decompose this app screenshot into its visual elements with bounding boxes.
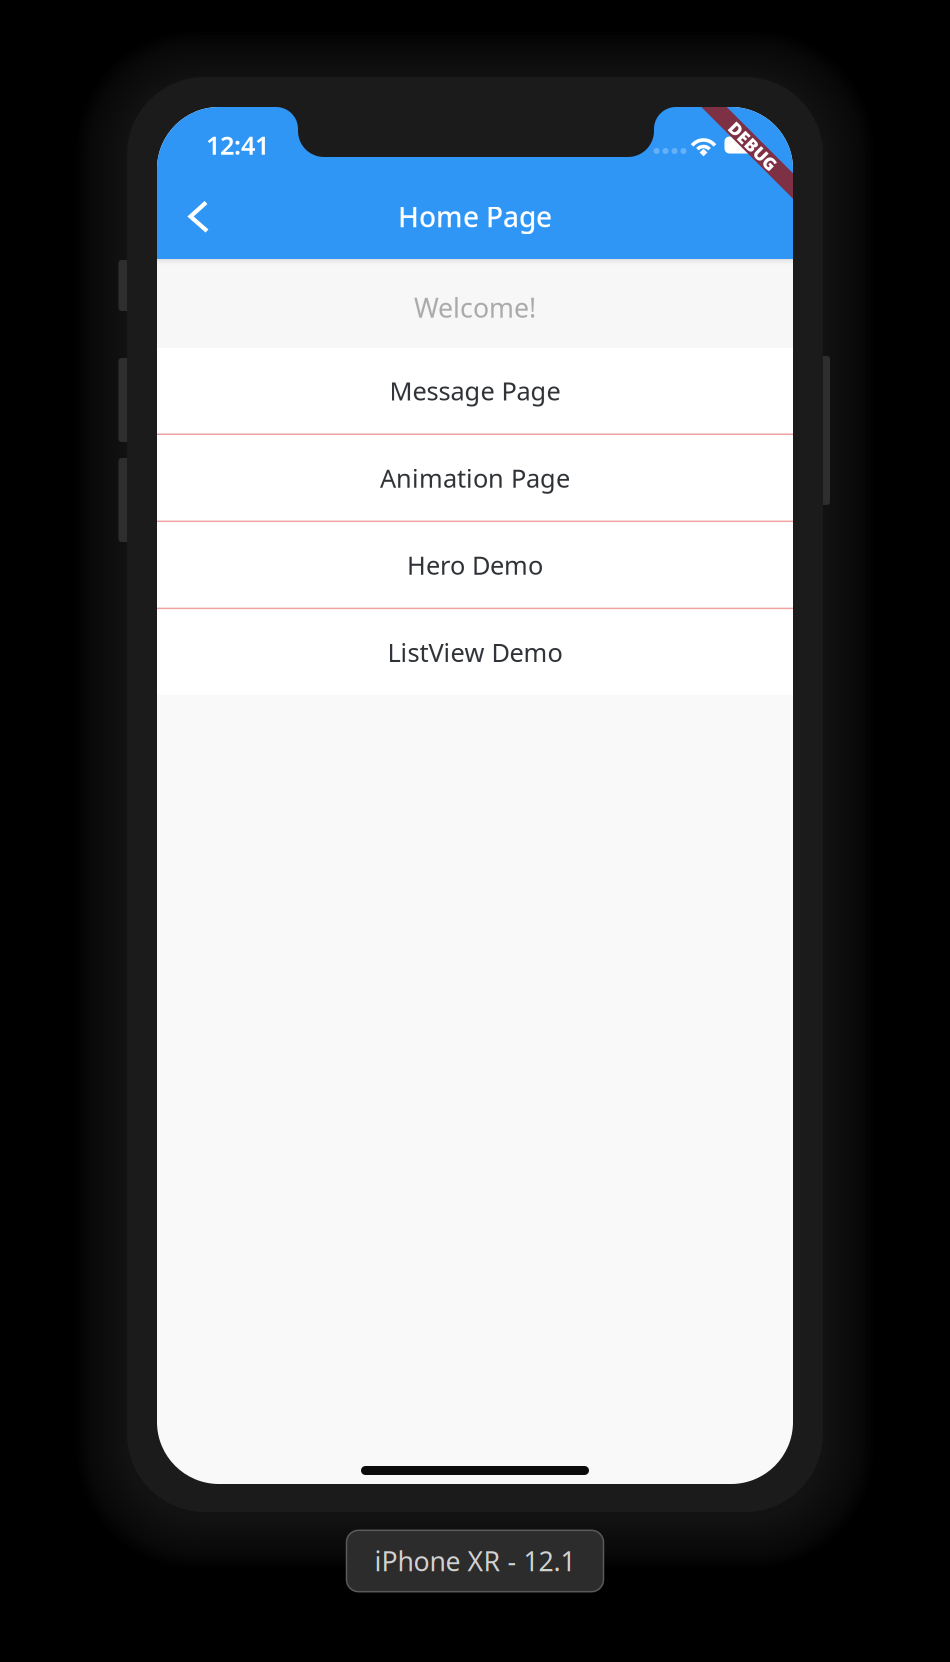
button[interactable]: Message Page	[157, 348, 793, 433]
staticText: 12:41	[206, 128, 269, 162]
button[interactable]: Back	[174, 190, 223, 243]
staticText: Welcome!	[414, 290, 536, 325]
button[interactable]: iPhone XR - 12.1	[346, 1530, 603, 1592]
staticText: Message Page	[389, 374, 560, 407]
button[interactable]: Animation Page	[157, 435, 793, 521]
staticText: Hero Demo	[407, 548, 543, 582]
staticText: Home Page	[398, 198, 552, 235]
staticText: iPhone XR - 12.1	[374, 1543, 575, 1579]
staticText: ListView Demo	[387, 635, 562, 669]
button[interactable]: ListView Demo	[157, 609, 793, 695]
staticText: Animation Page	[380, 461, 570, 495]
button[interactable]: Hero Demo	[157, 522, 793, 608]
staticText: DEBUG	[722, 134, 783, 157]
